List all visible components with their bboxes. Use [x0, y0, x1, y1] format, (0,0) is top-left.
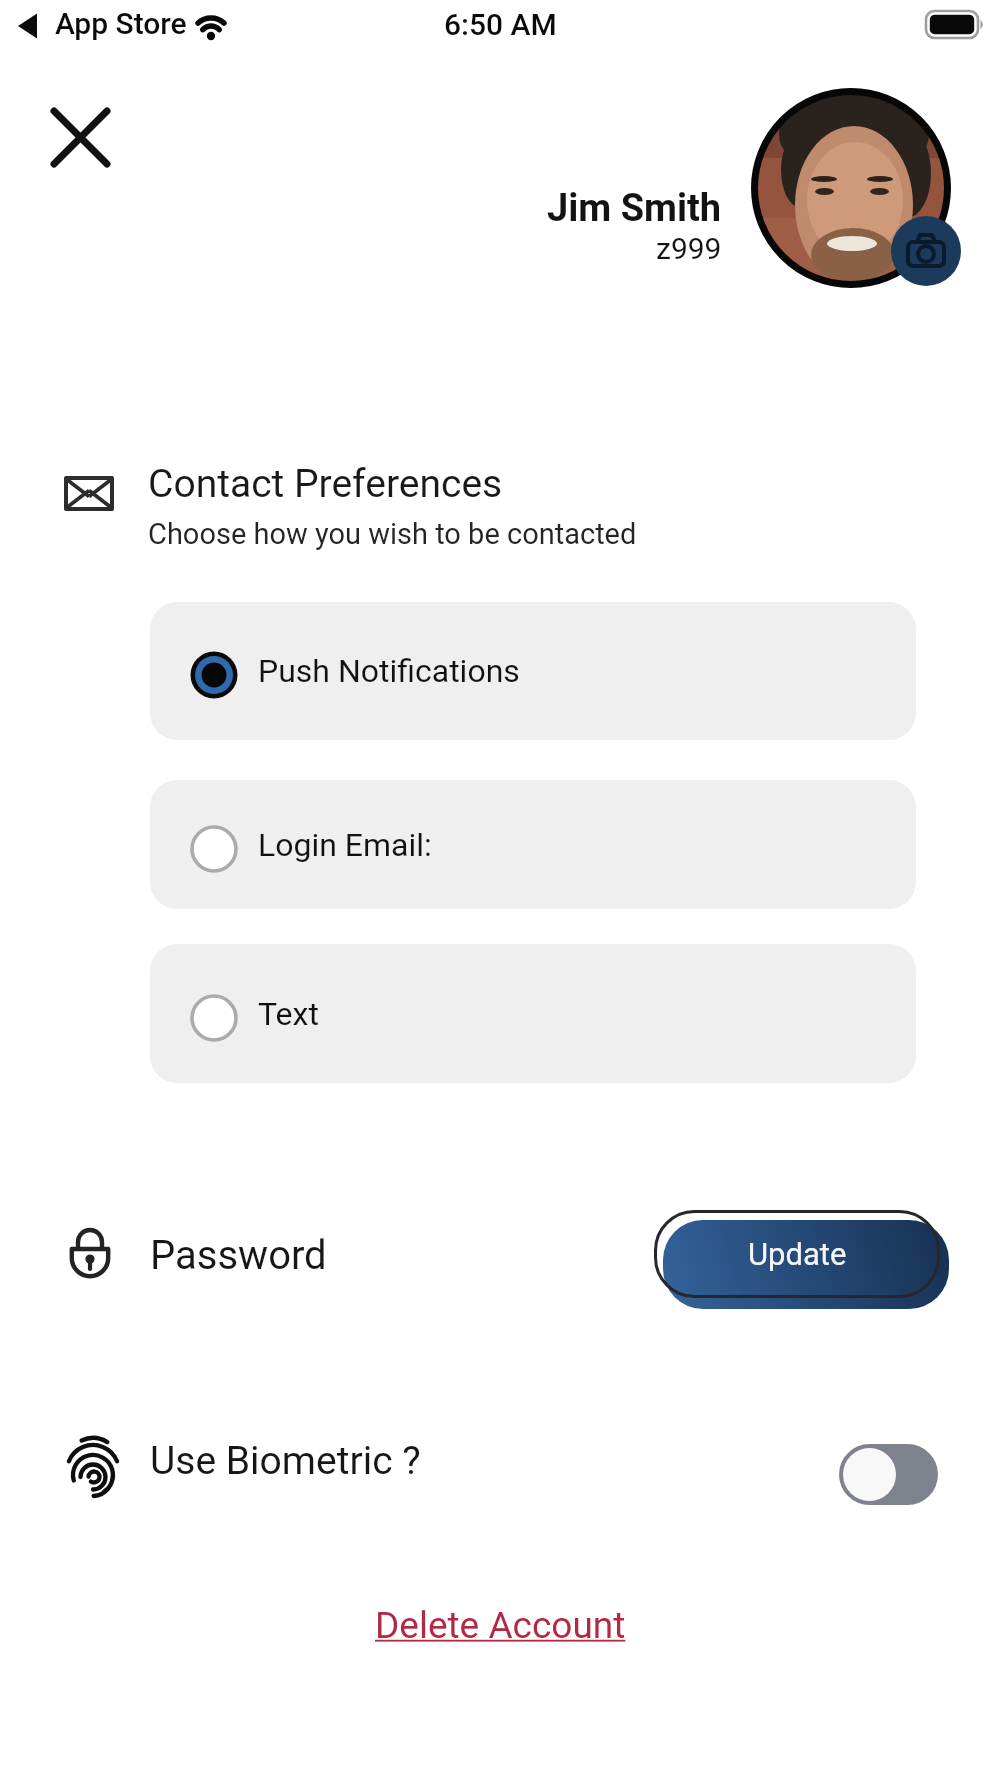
- button[interactable]: App Store: [14, 4, 244, 48]
- staticText: Delete Account: [375, 1604, 626, 1647]
- staticText: 6:50 AM: [444, 7, 557, 42]
- button[interactable]: Push Notifications: [150, 602, 916, 740]
- button[interactable]: Update: [654, 1210, 940, 1298]
- staticText: Login Email:: [258, 826, 432, 864]
- staticText: Contact Preferences: [148, 461, 503, 507]
- button[interactable]: [30, 87, 130, 187]
- staticText: Text: [258, 995, 319, 1033]
- staticText: Use Biometric ?: [150, 1438, 421, 1484]
- button[interactable]: [839, 1444, 938, 1505]
- staticText: Update: [748, 1236, 847, 1272]
- button[interactable]: [747, 84, 959, 296]
- button[interactable]: Delete Account: [369, 1598, 632, 1653]
- button[interactable]: Text: [150, 944, 916, 1083]
- staticText: Choose how you wish to be contacted: [148, 517, 637, 551]
- staticText: Push Notifications: [258, 652, 520, 690]
- button[interactable]: Login Email:: [150, 780, 916, 909]
- staticText: Jim Smith: [547, 186, 722, 231]
- staticText: Password: [150, 1232, 327, 1279]
- staticText: App Store: [55, 6, 187, 41]
- staticText: z999: [656, 231, 722, 266]
